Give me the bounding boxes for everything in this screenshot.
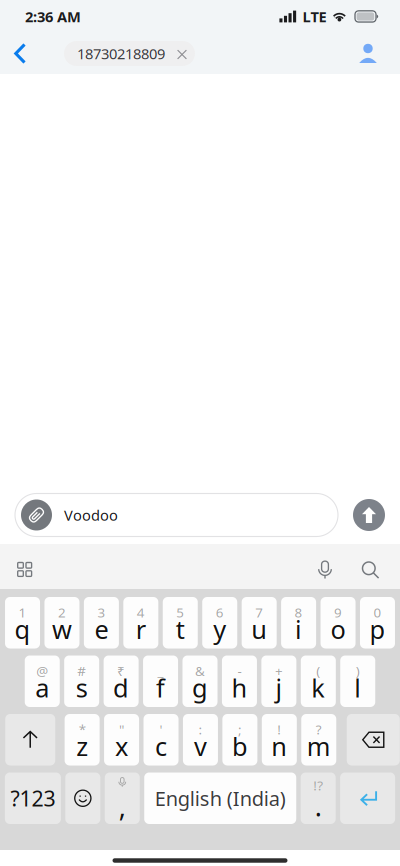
button[interactable]: @ xyxy=(25,655,60,707)
staticText: g xyxy=(192,671,208,704)
staticText: 2:36 AM xyxy=(25,7,81,26)
staticText: v xyxy=(194,729,207,763)
staticText: & xyxy=(195,662,205,680)
staticText: ' xyxy=(159,720,162,738)
staticText: ₹ xyxy=(117,662,125,680)
staticText: 6 xyxy=(216,603,224,621)
button[interactable]: 7 xyxy=(242,597,277,648)
staticText: j xyxy=(275,671,282,704)
staticText: d xyxy=(113,671,129,704)
staticText: r xyxy=(136,612,146,646)
staticText: English (India) xyxy=(155,785,286,812)
button[interactable]: & xyxy=(182,655,217,707)
button[interactable]: 4 xyxy=(123,597,158,648)
button[interactable]: ₹ xyxy=(104,655,139,707)
button[interactable]: : xyxy=(183,714,218,765)
button[interactable]: Contact info xyxy=(358,33,400,73)
button[interactable]: ; xyxy=(222,714,257,765)
staticText: 5 xyxy=(176,603,184,621)
staticText: b xyxy=(232,729,248,763)
staticText: + xyxy=(275,662,283,680)
button[interactable]: Apps xyxy=(0,544,33,589)
button[interactable] xyxy=(340,772,395,824)
button[interactable]: , xyxy=(105,772,140,824)
button[interactable] xyxy=(347,714,400,765)
staticText: 4 xyxy=(137,603,145,621)
staticText: i xyxy=(295,612,302,646)
button[interactable]: 9 xyxy=(320,597,355,648)
staticText: ; xyxy=(238,720,242,738)
staticText: n xyxy=(271,729,287,763)
staticText: * xyxy=(79,720,86,738)
staticText: # xyxy=(77,662,86,680)
staticText: z xyxy=(76,729,88,763)
staticText: !? xyxy=(313,776,323,794)
button[interactable]: Voice input xyxy=(316,544,361,589)
button[interactable] xyxy=(5,714,55,765)
button[interactable]: " xyxy=(104,714,139,765)
staticText: o xyxy=(330,612,345,646)
staticText: , xyxy=(119,788,126,824)
button[interactable]: ' xyxy=(143,714,178,765)
button[interactable]: 6 xyxy=(202,597,237,648)
button[interactable]: Voodoo xyxy=(15,493,338,536)
button[interactable]: !? xyxy=(301,772,336,824)
button[interactable]: 8 xyxy=(281,597,316,648)
staticText: a xyxy=(35,671,49,704)
button[interactable]: 0 xyxy=(360,597,395,648)
staticText: ) xyxy=(356,662,360,680)
staticText: ( xyxy=(316,662,320,680)
button[interactable]: ) xyxy=(340,655,375,707)
staticText: : xyxy=(198,720,202,738)
staticText: - xyxy=(237,662,241,680)
staticText: 2 xyxy=(58,603,66,621)
staticText: s xyxy=(76,671,88,704)
button[interactable]: + xyxy=(261,655,296,707)
staticText: 3 xyxy=(97,603,105,621)
staticText: w xyxy=(52,612,72,646)
staticText: 18730218809 xyxy=(77,44,165,63)
staticText: h xyxy=(231,671,247,704)
staticText: t xyxy=(176,612,185,646)
staticText: m xyxy=(307,729,331,763)
button[interactable]: ? xyxy=(301,714,336,765)
staticText: . xyxy=(315,788,322,824)
staticText: q xyxy=(14,612,30,646)
staticText: x xyxy=(115,729,128,763)
button[interactable]: 3 xyxy=(84,597,119,648)
staticText: e xyxy=(94,612,108,646)
staticText: p xyxy=(369,612,385,646)
staticText: l xyxy=(354,671,361,704)
staticText: " xyxy=(119,720,124,738)
staticText: 8 xyxy=(295,603,303,621)
button[interactable]: ! xyxy=(262,714,297,765)
staticText: f xyxy=(156,671,165,704)
button[interactable]: Search xyxy=(361,544,400,589)
button[interactable]: - xyxy=(222,655,257,707)
staticText: @ xyxy=(36,662,48,680)
staticText: _ xyxy=(158,662,164,680)
button[interactable]: 5 xyxy=(163,597,198,648)
staticText: y xyxy=(213,612,226,646)
staticText: c xyxy=(155,729,167,763)
staticText: ! xyxy=(277,720,281,738)
button[interactable]: 2 xyxy=(44,597,79,648)
staticText: 7 xyxy=(255,603,263,621)
button[interactable]: 1 xyxy=(5,597,40,648)
staticText: ?123 xyxy=(10,784,55,812)
button[interactable]: Send xyxy=(353,493,385,537)
staticText: LTE xyxy=(302,7,326,26)
button[interactable]: ?123 xyxy=(5,772,61,824)
button[interactable]: English (India) xyxy=(144,772,296,824)
staticText: Voodoo xyxy=(64,505,118,525)
button[interactable]: 18730218809 xyxy=(64,41,195,66)
staticText: 1 xyxy=(18,603,26,621)
button[interactable]: # xyxy=(64,655,99,707)
staticText: 9 xyxy=(334,603,342,621)
staticText: k xyxy=(311,671,325,704)
button[interactable]: * xyxy=(65,714,100,765)
button[interactable]: ( xyxy=(301,655,336,707)
button[interactable]: Back xyxy=(0,33,64,73)
button[interactable] xyxy=(65,772,100,824)
button[interactable]: _ xyxy=(143,655,178,707)
